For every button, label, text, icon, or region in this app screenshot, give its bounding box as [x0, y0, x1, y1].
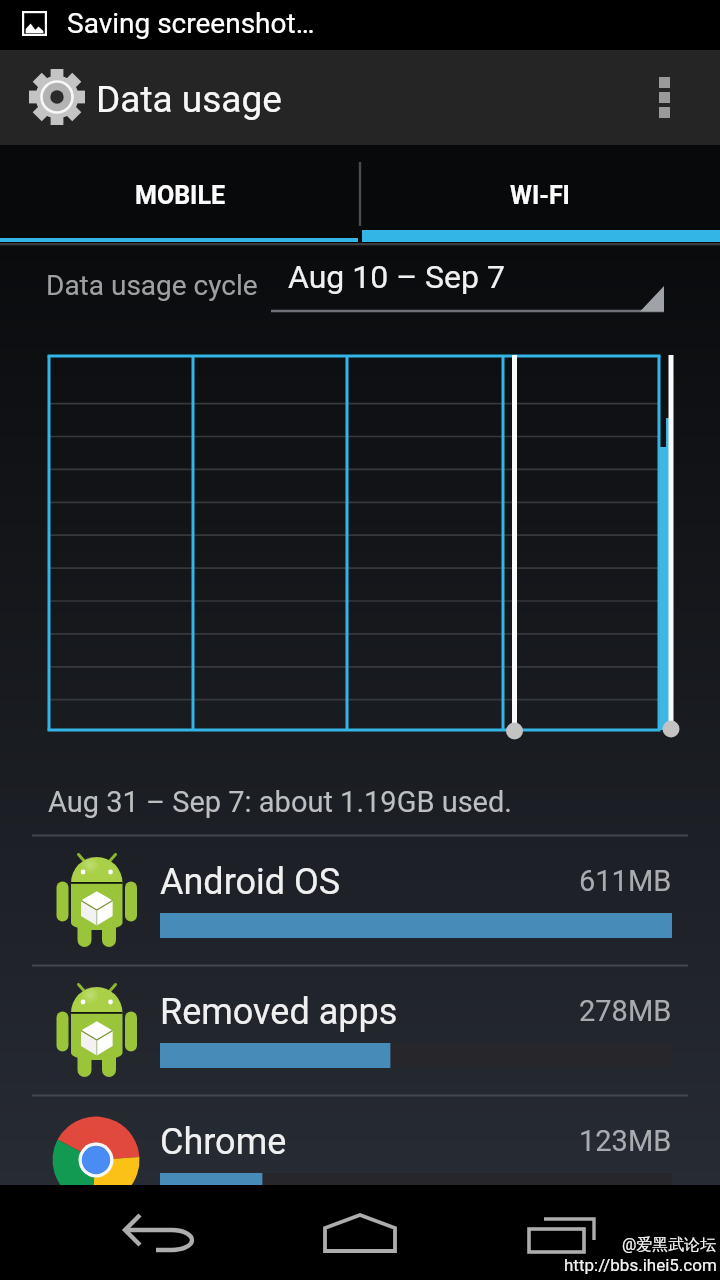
staticText: Aug 10 – Sep 7	[288, 258, 505, 296]
button[interactable]: Home	[281, 1185, 441, 1280]
button[interactable]: Back	[82, 1185, 242, 1280]
button[interactable]: WI-FI	[360, 145, 720, 246]
button[interactable]: Chrome	[0, 1093, 720, 1223]
staticText: http://bbs.ihei5.com	[564, 1255, 717, 1275]
button[interactable]: Removed apps	[0, 963, 720, 1093]
staticText: Saving screenshot…	[67, 7, 315, 40]
button[interactable]: Recent apps	[481, 1185, 641, 1280]
staticText: Chrome	[160, 1121, 287, 1163]
staticText: Removed apps	[160, 991, 398, 1033]
button[interactable]: More options	[624, 50, 704, 145]
button[interactable]: Aug 10 – Sep 7	[272, 250, 672, 312]
staticText: Data usage cycle	[46, 269, 258, 302]
button[interactable]: Android OS	[0, 833, 720, 963]
staticText: 611MB	[579, 864, 672, 898]
staticText: 278MB	[579, 994, 672, 1028]
staticText: Android OS	[160, 861, 341, 903]
staticText: Aug 31 – Sep 7: about 1.19GB used.	[48, 785, 512, 819]
staticText: Data usage	[96, 78, 282, 121]
staticText: WI-FI	[510, 181, 570, 210]
staticText: MOBILE	[135, 181, 226, 210]
button[interactable]: MOBILE	[0, 145, 360, 246]
staticText: 123MB	[579, 1124, 672, 1158]
staticText: @爱黑武论坛	[622, 1235, 717, 1255]
